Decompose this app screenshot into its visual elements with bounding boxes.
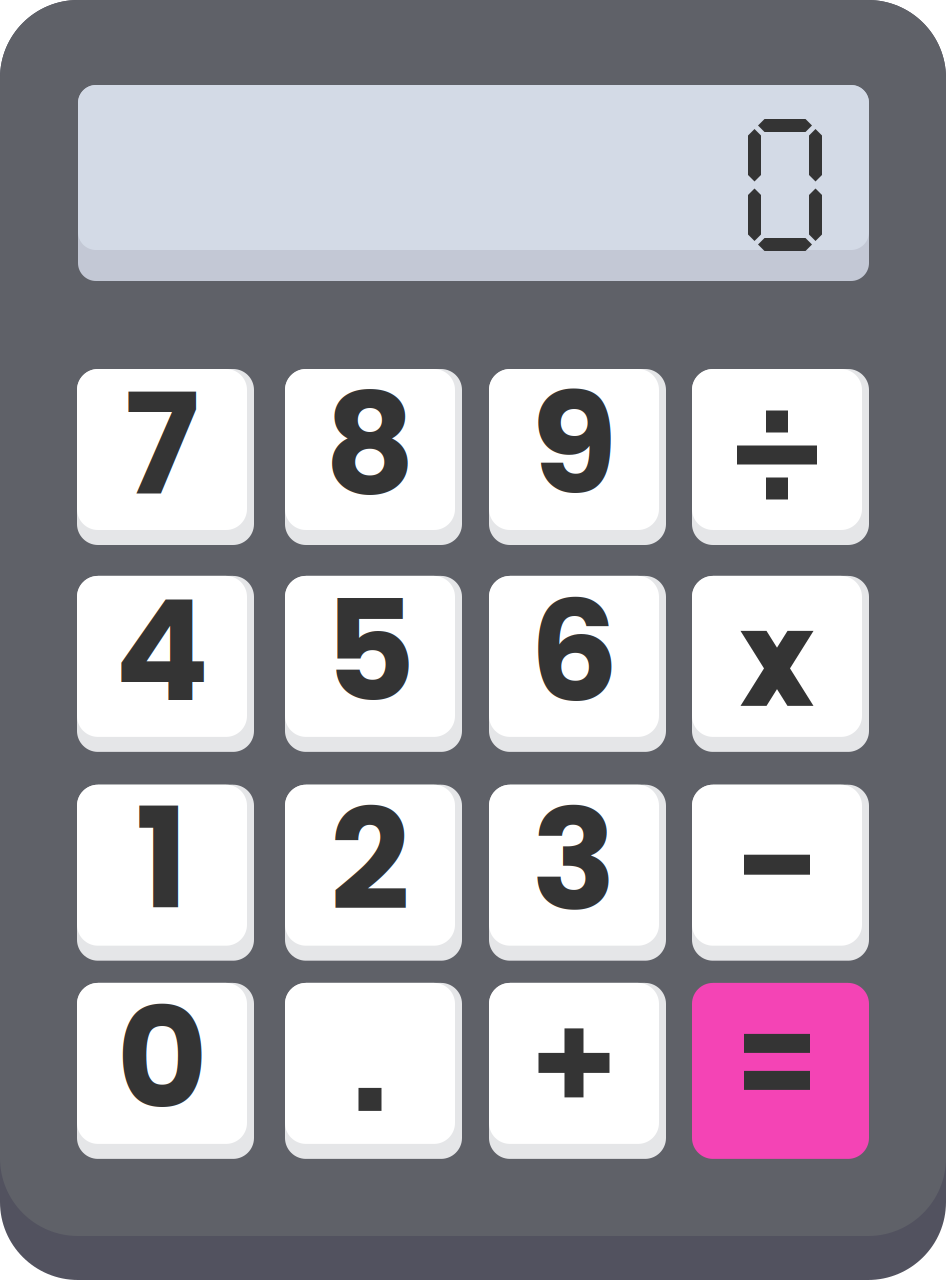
staticText: 1 [135,761,188,957]
button[interactable]: Divide [692,369,869,545]
button[interactable]: Equals [692,983,869,1159]
staticText: 0 [116,960,207,1156]
button[interactable]: 1 [77,785,254,961]
button[interactable]: 2 [285,785,462,961]
button[interactable]: 4 [77,576,254,752]
staticText: 9 [531,346,617,542]
staticText: 8 [324,346,415,542]
button[interactable]: 7 [77,369,254,545]
button[interactable]: 0 [77,983,254,1159]
button[interactable]: 9 [489,369,666,545]
button[interactable]: Plus [489,983,666,1159]
staticText: 6 [529,553,618,749]
staticText: 2 [330,762,410,958]
button[interactable]: 8 [285,369,462,545]
staticText: 7 [124,346,199,542]
staticText: 5 [324,553,415,749]
button[interactable]: Minus [692,785,869,961]
button[interactable]: 5 [285,576,462,752]
staticText: 3 [531,762,616,958]
staticText: 4 [114,553,209,749]
button[interactable]: 3 [489,785,666,961]
button[interactable]: Decimal point [285,983,462,1159]
button[interactable]: 6 [489,576,666,752]
button[interactable]: Multiply [692,576,869,752]
